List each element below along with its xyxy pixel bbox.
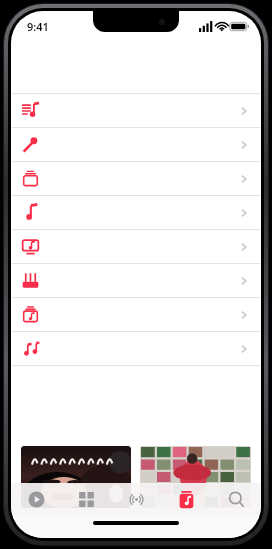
button[interactable]: Albums	[11, 162, 261, 195]
button[interactable]: Music Videos	[11, 230, 261, 263]
button[interactable]: Artists	[11, 128, 261, 161]
button[interactable]: Radio	[111, 483, 161, 516]
button[interactable]: Library	[161, 483, 211, 516]
button[interactable]: Songs	[11, 196, 261, 229]
button[interactable]: Listen Now	[11, 483, 61, 516]
button[interactable]: Compilations	[11, 298, 261, 331]
button[interactable]: Search	[211, 483, 261, 516]
button[interactable]: Album Laurel Hell	[21, 446, 131, 508]
staticText: 9:41	[27, 19, 49, 34]
button[interactable]: Album artwork	[140, 446, 251, 508]
button[interactable]: Playlists	[11, 94, 261, 127]
button[interactable]: Genres	[11, 264, 261, 297]
button[interactable]: Browse	[61, 483, 111, 516]
button[interactable]: Composers	[11, 332, 261, 365]
